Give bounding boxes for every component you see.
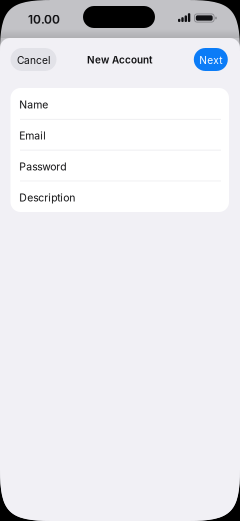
button[interactable]: Name [10,88,229,119]
staticText: Email [19,129,46,142]
staticText: Password [19,160,66,173]
staticText: Cancel [17,54,50,66]
staticText: Next [199,54,222,66]
button[interactable]: Next [194,48,228,71]
button[interactable]: Email [10,119,229,150]
staticText: Description [19,191,75,204]
staticText: Name [19,98,48,111]
staticText: New Account [87,54,153,66]
staticText: 10.00 [28,12,60,26]
button[interactable]: Description [10,181,229,212]
button[interactable]: Cancel [10,48,56,71]
button[interactable]: Password [10,150,229,181]
